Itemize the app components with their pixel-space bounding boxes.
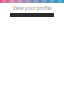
staticText: View your profile xyxy=(12,4,51,12)
